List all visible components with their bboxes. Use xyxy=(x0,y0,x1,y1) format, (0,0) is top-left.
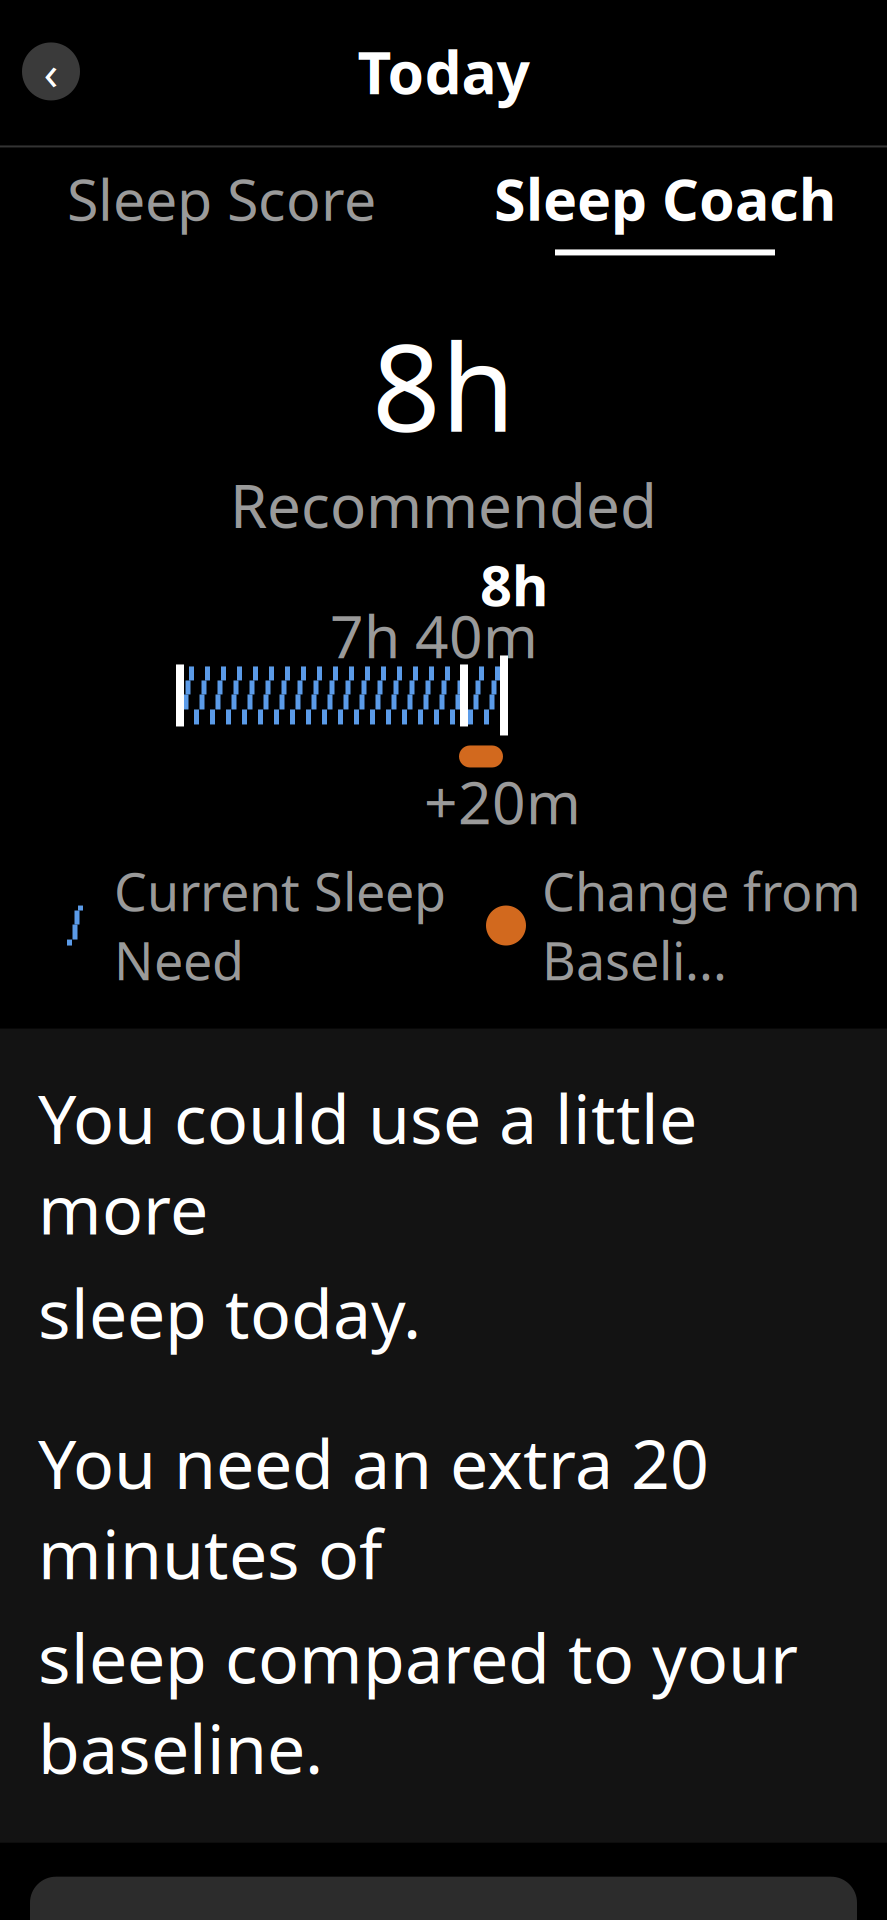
staticText: You need an extra 20 minutes of xyxy=(38,1417,709,1598)
staticText: 8h xyxy=(480,547,548,622)
staticText: 8h xyxy=(372,305,515,465)
staticText: Change from Baseli... xyxy=(542,856,861,995)
staticText: sleep compared to your baseline. xyxy=(38,1612,798,1793)
staticText: ‹ xyxy=(43,40,58,103)
button[interactable]: Sleep Coach xyxy=(443,147,887,255)
staticText: You could use a little more xyxy=(38,1073,697,1253)
button[interactable]: Sleep Score xyxy=(0,147,443,255)
staticText: Today xyxy=(357,32,529,110)
staticText: 7h 40m xyxy=(330,596,538,674)
staticText: Current Sleep Need xyxy=(114,856,446,995)
staticText: Recommended xyxy=(230,465,657,544)
staticText: Sleep Score xyxy=(67,160,376,236)
staticText: Sleep Coach xyxy=(494,160,836,236)
staticText: +20m xyxy=(424,762,581,840)
staticText: sleep today. xyxy=(38,1267,421,1357)
button[interactable]: Previous day xyxy=(22,42,80,100)
button[interactable]: Sleep History xyxy=(30,1877,857,1920)
